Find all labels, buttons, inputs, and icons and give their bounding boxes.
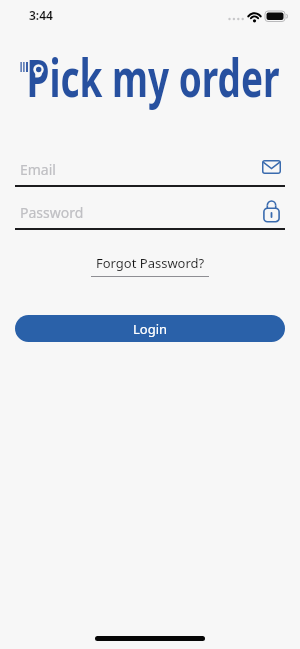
button[interactable]: Forgot Password? bbox=[91, 254, 209, 277]
staticText: Forgot Password? bbox=[96, 254, 205, 272]
button[interactable] bbox=[15, 196, 285, 230]
button[interactable]: Login bbox=[15, 315, 285, 342]
staticText: Login bbox=[133, 320, 168, 338]
staticText: 3:44 bbox=[29, 7, 53, 23]
button[interactable] bbox=[15, 153, 285, 187]
staticText: Password bbox=[20, 203, 84, 222]
staticText: Pick my order bbox=[25, 41, 281, 112]
staticText: Email bbox=[20, 160, 56, 179]
